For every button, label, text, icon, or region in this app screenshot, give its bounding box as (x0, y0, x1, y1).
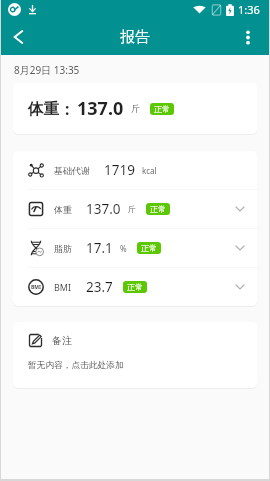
button[interactable]: 体重 (13, 190, 257, 228)
staticText: 斤 (128, 204, 136, 214)
staticText: BMI (54, 281, 72, 293)
staticText: BMI (31, 284, 41, 291)
staticText: 17.1 (86, 239, 113, 257)
staticText: 体重 (28, 99, 59, 119)
staticText: 1:36 (238, 2, 260, 17)
staticText: 体重 (54, 204, 72, 215)
button[interactable]: 脂肪 (13, 229, 257, 267)
staticText: 基础代谢 (54, 165, 90, 176)
button[interactable]: More options (230, 19, 266, 55)
button[interactable]: BMI (13, 268, 257, 306)
staticText: 正常 (154, 104, 170, 114)
button[interactable]: 基础代谢 (13, 151, 257, 189)
staticText: 报告 (120, 28, 150, 47)
staticText: 暂无内容，点击此处添加 (28, 360, 124, 371)
staticText: 斤 (131, 103, 140, 114)
staticText: : (65, 98, 70, 119)
staticText: 正常 (141, 243, 157, 253)
staticText: kcal (142, 165, 157, 176)
button[interactable]: Back (1, 20, 35, 54)
staticText: 8月29日 13:35 (14, 63, 80, 77)
staticText: 137.0 (86, 200, 121, 218)
staticText: 1719 (104, 161, 135, 179)
staticText: 23.7 (86, 278, 113, 296)
staticText: % (120, 243, 127, 254)
staticText: 137.0 (77, 96, 124, 121)
staticText: 备注 (52, 334, 72, 347)
staticText: 正常 (127, 282, 143, 292)
staticText: 正常 (150, 204, 166, 214)
staticText: 脂肪 (54, 243, 72, 254)
